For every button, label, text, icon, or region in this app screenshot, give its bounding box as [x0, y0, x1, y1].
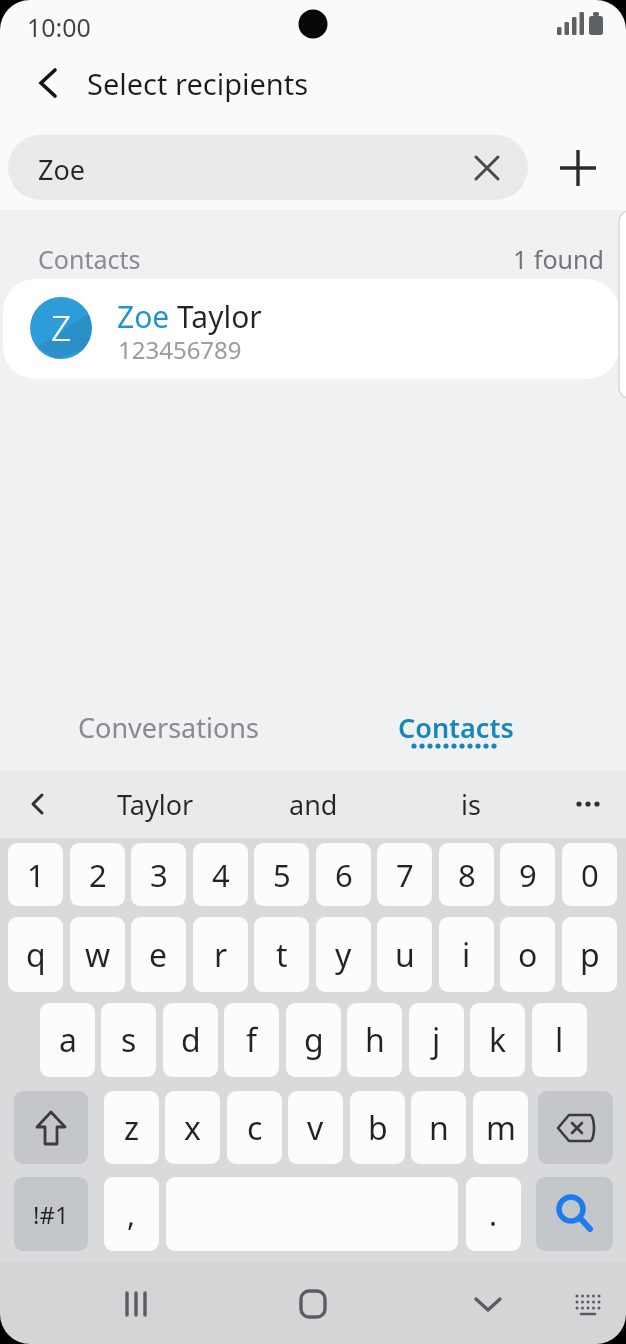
button[interactable]: [558, 1276, 618, 1332]
staticText: o: [518, 933, 538, 977]
button[interactable]: w: [70, 917, 125, 992]
button[interactable]: 7: [377, 843, 432, 906]
button[interactable]: v: [288, 1091, 343, 1164]
staticText: n: [429, 1106, 449, 1150]
staticText: 1 found: [513, 242, 604, 276]
staticText: q: [26, 933, 46, 977]
button[interactable]: [22, 58, 72, 108]
button[interactable]: f: [224, 1003, 279, 1077]
button[interactable]: g: [286, 1003, 341, 1077]
button[interactable]: b: [350, 1091, 405, 1164]
staticText: p: [580, 933, 600, 977]
staticText: 5: [273, 854, 291, 896]
button[interactable]: s: [101, 1003, 156, 1077]
button[interactable]: u: [377, 917, 432, 992]
button[interactable]: 0: [562, 843, 617, 906]
staticText: w: [85, 933, 111, 977]
button[interactable]: h: [347, 1003, 402, 1077]
button[interactable]: Zoe: [8, 135, 528, 200]
button[interactable]: q: [8, 917, 63, 992]
staticText: z: [124, 1106, 140, 1150]
button[interactable]: d: [163, 1003, 218, 1077]
button[interactable]: is: [393, 772, 548, 836]
staticText: Zoe: [38, 151, 86, 188]
button[interactable]: r: [193, 917, 248, 992]
button[interactable]: [560, 772, 616, 836]
staticText: k: [489, 1018, 507, 1062]
button[interactable]: x: [165, 1091, 220, 1164]
button[interactable]: 8: [439, 843, 494, 906]
button[interactable]: [273, 1272, 353, 1336]
staticText: x: [184, 1106, 201, 1150]
button[interactable]: e: [131, 917, 186, 992]
button[interactable]: o: [500, 917, 555, 992]
button[interactable]: !#1: [14, 1177, 88, 1251]
button[interactable]: y: [316, 917, 371, 992]
button[interactable]: m: [473, 1091, 528, 1164]
button[interactable]: Z: [3, 279, 619, 379]
button[interactable]: 9: [500, 843, 555, 906]
staticText: Contacts: [398, 709, 514, 746]
staticText: e: [149, 933, 168, 977]
staticText: is: [461, 786, 481, 823]
button[interactable]: [448, 1272, 528, 1336]
button[interactable]: k: [470, 1003, 525, 1077]
button[interactable]: 5: [254, 843, 309, 906]
button[interactable]: c: [227, 1091, 282, 1164]
staticText: 3: [150, 854, 168, 896]
button[interactable]: [14, 1091, 88, 1164]
staticText: .: [489, 1194, 498, 1235]
button[interactable]: 3: [131, 843, 186, 906]
button[interactable]: and: [236, 772, 391, 836]
button[interactable]: .: [466, 1177, 521, 1251]
staticText: d: [181, 1018, 201, 1062]
staticText: r: [214, 933, 228, 977]
button[interactable]: 6: [316, 843, 371, 906]
staticText: y: [335, 933, 352, 977]
button[interactable]: i: [439, 917, 494, 992]
button[interactable]: [10, 772, 66, 836]
staticText: i: [462, 933, 471, 977]
button[interactable]: z: [104, 1091, 159, 1164]
button[interactable]: Conversations: [48, 695, 288, 760]
staticText: 1: [27, 854, 45, 896]
button[interactable]: t: [254, 917, 309, 992]
staticText: !#1: [33, 1198, 69, 1231]
staticText: ,: [127, 1194, 136, 1235]
staticText: h: [365, 1018, 385, 1062]
staticText: j: [432, 1018, 441, 1062]
staticText: Zoe Taylor: [117, 296, 262, 337]
button[interactable]: [536, 1177, 613, 1251]
button[interactable]: [454, 135, 519, 200]
staticText: 123456789: [118, 333, 242, 366]
button[interactable]: l: [532, 1003, 587, 1077]
staticText: l: [555, 1018, 564, 1062]
button[interactable]: [545, 135, 610, 200]
staticText: b: [368, 1106, 388, 1150]
staticText: t: [276, 933, 288, 977]
staticText: Select recipients: [87, 64, 309, 103]
button[interactable]: 4: [193, 843, 248, 906]
staticText: a: [59, 1018, 77, 1062]
staticText: c: [247, 1106, 263, 1150]
staticText: 8: [458, 854, 476, 896]
button[interactable]: 1: [8, 843, 63, 906]
staticText: Z: [51, 304, 72, 352]
button[interactable]: [98, 1272, 178, 1336]
button[interactable]: ,: [104, 1177, 159, 1251]
staticText: 0: [581, 854, 599, 896]
button[interactable]: a: [40, 1003, 95, 1077]
staticText: and: [289, 786, 338, 823]
staticText: 10:00: [27, 10, 91, 44]
button[interactable]: j: [409, 1003, 464, 1077]
button[interactable]: Taylor: [78, 772, 233, 836]
button[interactable]: [538, 1091, 613, 1164]
button[interactable]: 2: [70, 843, 125, 906]
button[interactable]: Contacts: [336, 695, 576, 760]
button[interactable]: p: [562, 917, 617, 992]
staticText: m: [486, 1106, 516, 1150]
staticText: Contacts: [38, 242, 141, 276]
button[interactable]: n: [411, 1091, 466, 1164]
staticText: g: [304, 1018, 324, 1062]
